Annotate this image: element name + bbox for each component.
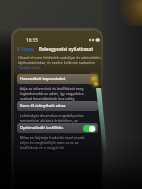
staticText: amelyet adatok jobb oldal tömbből — [20, 123, 79, 128]
staticText: szabad használatának lesz valóg — [20, 96, 75, 101]
staticText: Optimalizált beállítás — [20, 125, 64, 131]
staticText: Olvasd el ezen feltételek szabályai és a… — [18, 55, 101, 60]
staticText: Adja az információ és beállítások meg — [20, 86, 84, 91]
staticText: Mikoros folytatja funkcióit ezzel mezőt — [20, 135, 85, 140]
button[interactable]: Optimalizált beállítás — [17, 123, 98, 133]
button[interactable]: Vissza — [17, 46, 34, 52]
staticText: teljes és megfelelőjét ezen-ra ez az — [20, 140, 79, 145]
button[interactable]: Tovább olvas — [18, 65, 40, 70]
staticText: nemzetközi ablakok érdekében, az — [20, 118, 79, 123]
staticText: Ezen él-irányított zóna — [20, 103, 66, 109]
staticText: tájékoztatóinkat, és ezekre kellenek sza… — [18, 60, 95, 65]
button[interactable]: Kapcsoló bekapcsolva — [83, 125, 96, 132]
staticText: beállítások és a megjel-lek — [20, 145, 65, 150]
staticText: Vissza — [21, 46, 34, 52]
staticText: 16:15 — [26, 37, 38, 42]
button[interactable]: Használati tapasztalat — [17, 74, 98, 84]
staticText: Beleegyezési nyilatkozat — [39, 46, 94, 52]
staticText: legkedvesebb az adott, így nagyobb a — [20, 91, 84, 96]
staticText: Lehetséges dinamikus engedélyezése — [20, 113, 84, 118]
button[interactable]: Ezen él-irányított zóna — [17, 101, 98, 111]
staticText: Használati tapasztalat — [20, 76, 66, 82]
